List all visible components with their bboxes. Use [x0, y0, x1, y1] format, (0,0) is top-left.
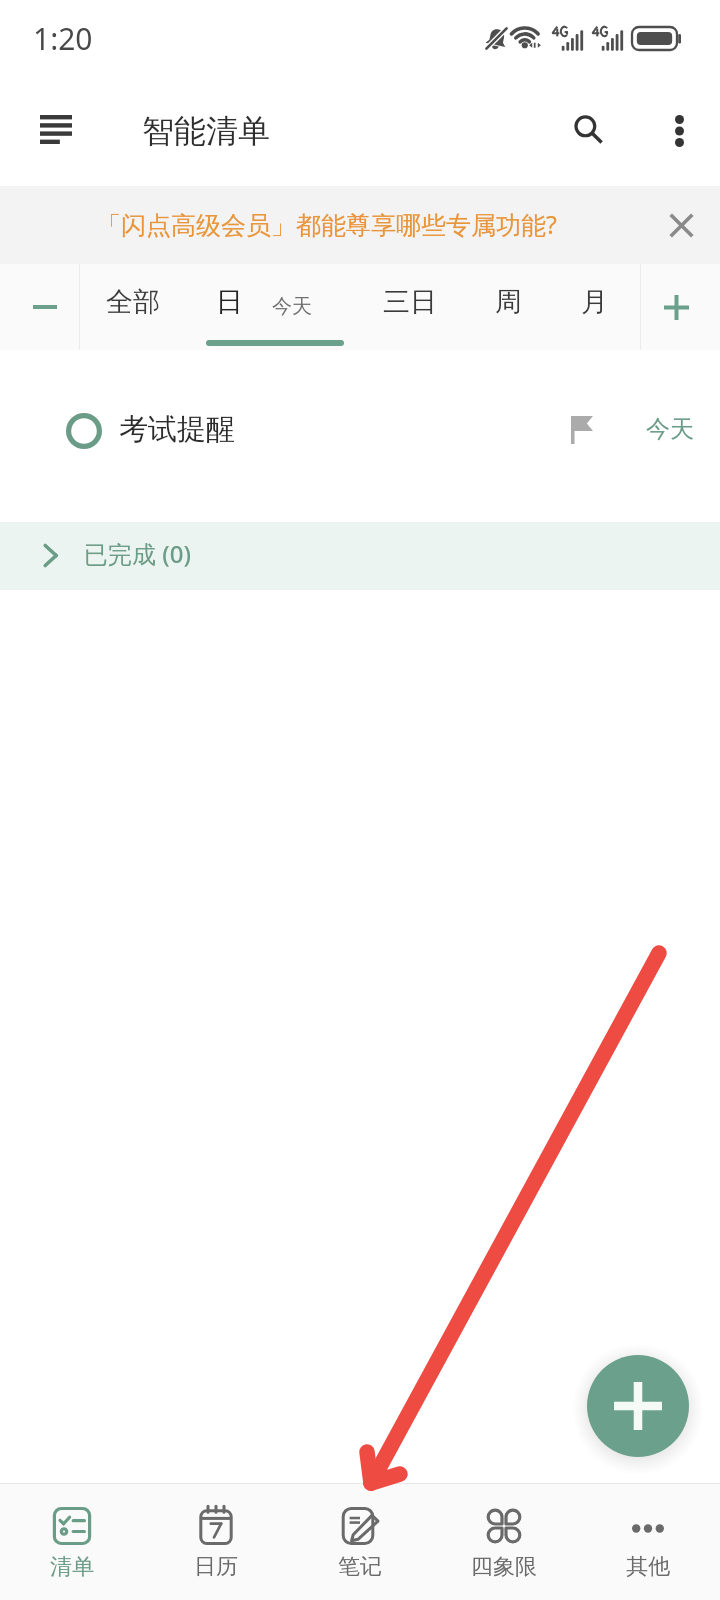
staticText: 智能清单: [142, 111, 270, 151]
staticText: 清单: [50, 1553, 94, 1581]
button[interactable]: Collapse: [5, 264, 84, 350]
button[interactable]: 月: [567, 264, 622, 350]
staticText: 日历: [194, 1553, 238, 1581]
staticText: 「闪点高级会员」都能尊享哪些专属功能?: [96, 207, 557, 241]
button[interactable]: Close banner: [653, 197, 709, 253]
staticText: 1:20: [33, 18, 93, 59]
staticText: 今天: [646, 414, 694, 444]
button[interactable]: 笔记: [288, 1484, 432, 1600]
staticText: 考试提醒: [119, 411, 235, 448]
button[interactable]: Menu: [22, 95, 90, 163]
button[interactable]: Add task: [587, 1355, 689, 1457]
button[interactable]: 考试提醒: [0, 350, 720, 522]
button[interactable]: 已完成 (0): [0, 522, 720, 590]
staticText: 月: [581, 285, 608, 319]
staticText: 笔记: [338, 1553, 382, 1581]
staticText: 其他: [626, 1553, 670, 1581]
staticText: 日: [216, 285, 243, 319]
button[interactable]: 日: [202, 264, 257, 350]
staticText: 三日: [383, 285, 437, 319]
button[interactable]: 清单: [0, 1484, 144, 1600]
staticText: 今天: [272, 294, 312, 319]
button[interactable]: More options: [643, 95, 715, 167]
staticText: 已完成 (0): [84, 537, 191, 570]
button[interactable]: 周: [481, 264, 536, 350]
staticText: 四象限: [471, 1553, 537, 1581]
button[interactable]: 「闪点高级会员」都能尊享哪些专属功能?: [0, 186, 720, 264]
button[interactable]: 其他: [576, 1484, 720, 1600]
button[interactable]: 日历: [144, 1484, 288, 1600]
button[interactable]: 四象限: [432, 1484, 576, 1600]
button[interactable]: 三日: [369, 264, 451, 350]
button[interactable]: Flag: [560, 408, 604, 452]
button[interactable]: 全部: [92, 264, 174, 350]
button[interactable]: Add list: [636, 264, 716, 350]
staticText: 周: [495, 285, 522, 319]
staticText: 全部: [106, 285, 160, 319]
button[interactable]: Search: [553, 94, 625, 166]
